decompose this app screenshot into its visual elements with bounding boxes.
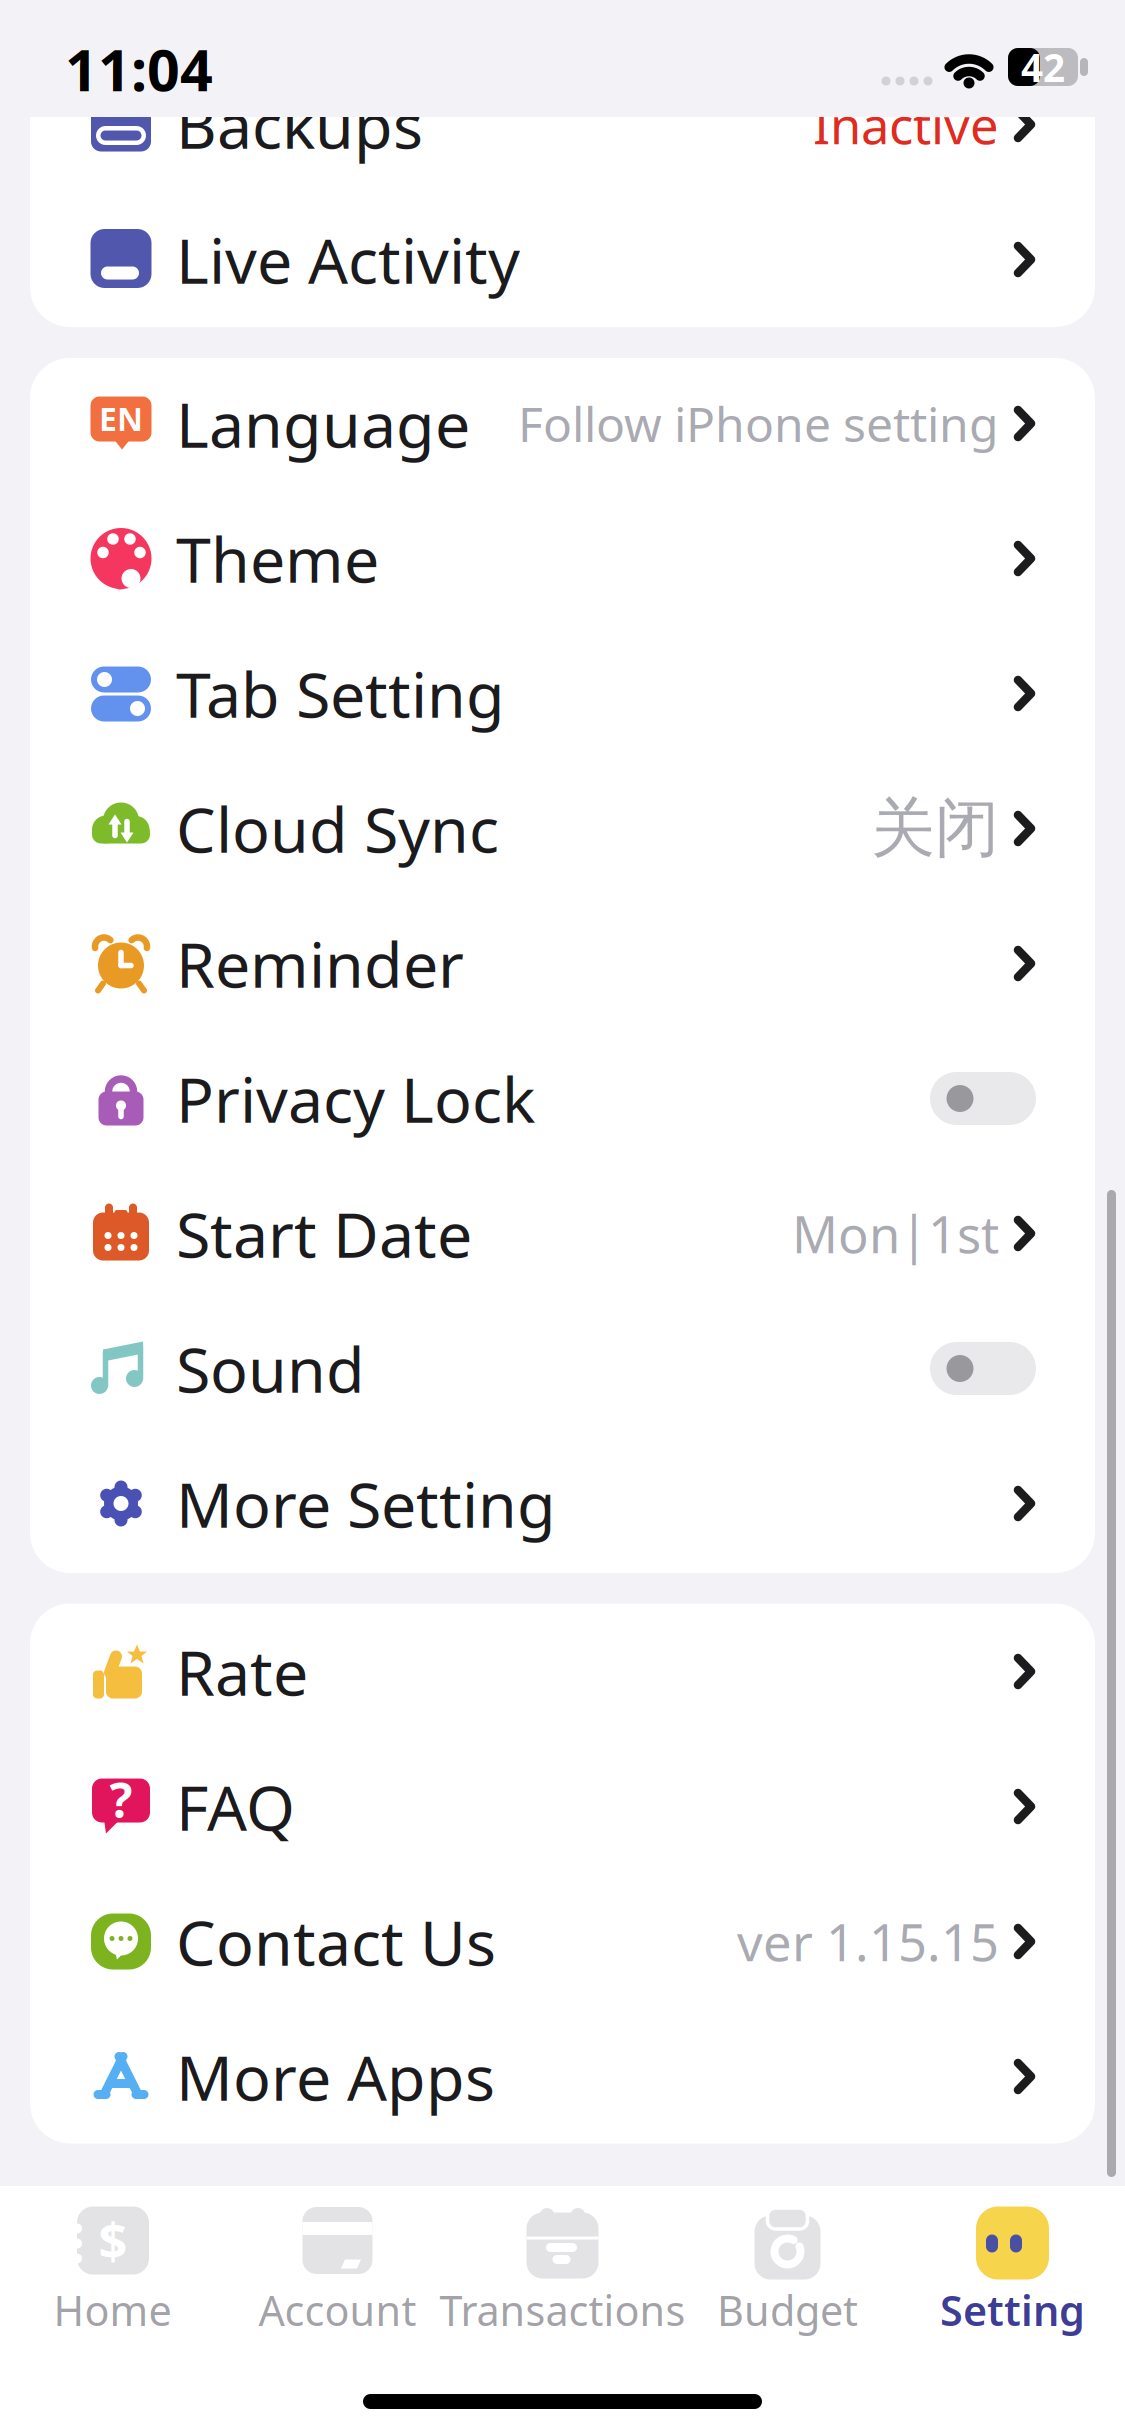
staticText: Reminder	[176, 922, 464, 1005]
staticText: Theme	[176, 517, 379, 600]
staticText: Cloud Sync	[176, 787, 499, 870]
staticText: Backups	[176, 83, 423, 166]
staticText: Privacy Lock	[176, 1057, 535, 1140]
button[interactable]: EN	[30, 356, 1095, 491]
button[interactable]: Start Date	[30, 1166, 1095, 1301]
button[interactable]: Theme	[30, 491, 1095, 626]
staticText: Follow iPhone setting	[518, 392, 999, 455]
staticText: Rate	[176, 1630, 308, 1713]
button[interactable]: More Setting	[30, 1436, 1095, 1571]
button[interactable]: Rate	[30, 1604, 1095, 1739]
staticText: ?	[109, 1768, 132, 1831]
staticText: FAQ	[176, 1765, 295, 1848]
staticText: 关闭	[871, 789, 999, 868]
button[interactable]: Backups	[30, 57, 1095, 192]
button[interactable]: Budget	[675, 2186, 900, 2376]
button[interactable]: Account	[225, 2186, 450, 2376]
staticText: Setting	[940, 2283, 1085, 2337]
staticText: More Setting	[176, 1462, 556, 1545]
button[interactable]: More Apps	[30, 2009, 1095, 2144]
staticText: Home	[53, 2283, 171, 2337]
staticText: Contact Us	[176, 1900, 496, 1983]
button[interactable]: Tab Setting	[30, 626, 1095, 761]
staticText: ver 1.15.15	[737, 1908, 999, 1975]
staticText: Inactive	[813, 91, 999, 158]
staticText: EN	[99, 397, 143, 440]
button[interactable]: Setting	[900, 2186, 1125, 2376]
staticText: Start Date	[176, 1192, 472, 1275]
button[interactable]: Transactions	[450, 2186, 675, 2376]
staticText: Mon|1st	[792, 1200, 999, 1267]
staticText: Live Activity	[176, 218, 520, 301]
staticText: 42	[1021, 41, 1065, 93]
button[interactable]: ?	[30, 1739, 1095, 1874]
staticText: Language	[176, 382, 470, 465]
staticText: Tab Setting	[176, 652, 505, 735]
button[interactable]: Privacy Lock	[30, 1031, 1095, 1166]
button[interactable]: Live Activity	[30, 192, 1095, 327]
staticText: More Apps	[176, 2035, 495, 2118]
staticText: Budget	[717, 2283, 858, 2337]
staticText: Sound	[176, 1327, 365, 1410]
staticText: $	[98, 2206, 127, 2273]
button[interactable]: $	[0, 2186, 225, 2376]
staticText: Account	[258, 2283, 416, 2337]
button[interactable]: Contact Us	[30, 1874, 1095, 2009]
staticText: 11:04	[65, 31, 213, 107]
staticText: Transactions	[439, 2283, 685, 2337]
button[interactable]: Cloud Sync	[30, 761, 1095, 896]
button[interactable]: Reminder	[30, 896, 1095, 1031]
button[interactable]: Sound	[30, 1301, 1095, 1436]
